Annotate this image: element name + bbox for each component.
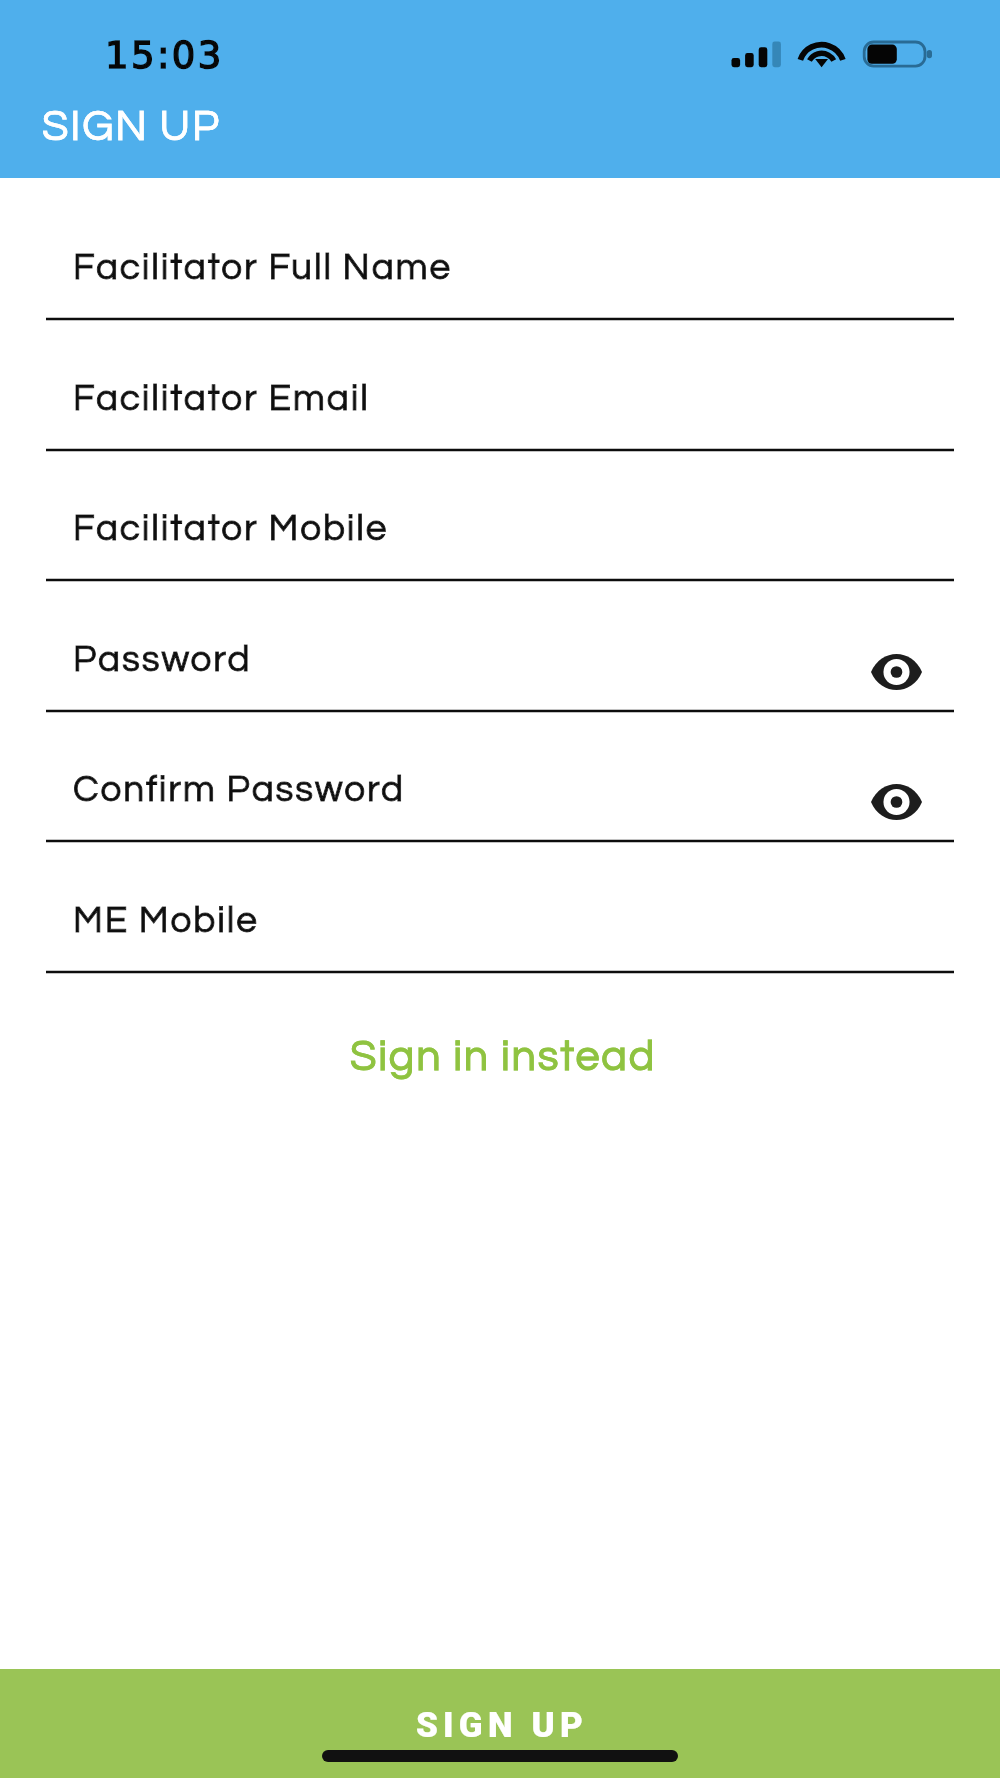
staticText: Facilitator Full Name	[73, 249, 453, 287]
staticText: SIGN UP	[416, 1705, 588, 1746]
staticText: Sign in instead	[350, 1035, 657, 1079]
staticText: Sign in instead	[350, 1035, 657, 1079]
staticText: Facilitator Email	[73, 380, 370, 418]
staticText: Password	[73, 641, 252, 679]
staticText: Confirm Password	[73, 771, 406, 809]
staticText: Facilitator Email	[73, 380, 370, 418]
staticText: Facilitator Mobile	[73, 510, 389, 548]
button[interactable]: ME Mobile	[0, 844, 1000, 975]
button[interactable]: Password	[0, 583, 1000, 714]
button[interactable]: Sign in instead	[328, 1025, 679, 1089]
staticText: SIGN UP	[42, 105, 221, 149]
button[interactable]: SIGN UP	[0, 1669, 1000, 1778]
button[interactable]: Show password	[857, 641, 935, 703]
staticText: 15:03	[105, 34, 224, 77]
staticText: SIGN UP	[42, 105, 221, 149]
button[interactable]: Facilitator Full Name	[0, 178, 1000, 322]
staticText: ME Mobile	[73, 902, 259, 940]
button[interactable]: Facilitator Email	[0, 322, 1000, 453]
staticText: ME Mobile	[73, 902, 259, 940]
staticText: Password	[73, 641, 252, 679]
button[interactable]: Confirm Password	[0, 713, 1000, 844]
button[interactable]: Show password	[857, 771, 935, 833]
button[interactable]: Facilitator Mobile	[0, 452, 1000, 583]
staticText: Facilitator Full Name	[73, 249, 453, 287]
staticText: Facilitator Mobile	[73, 510, 389, 548]
staticText: 15:03	[105, 34, 224, 77]
staticText: Confirm Password	[73, 771, 406, 809]
